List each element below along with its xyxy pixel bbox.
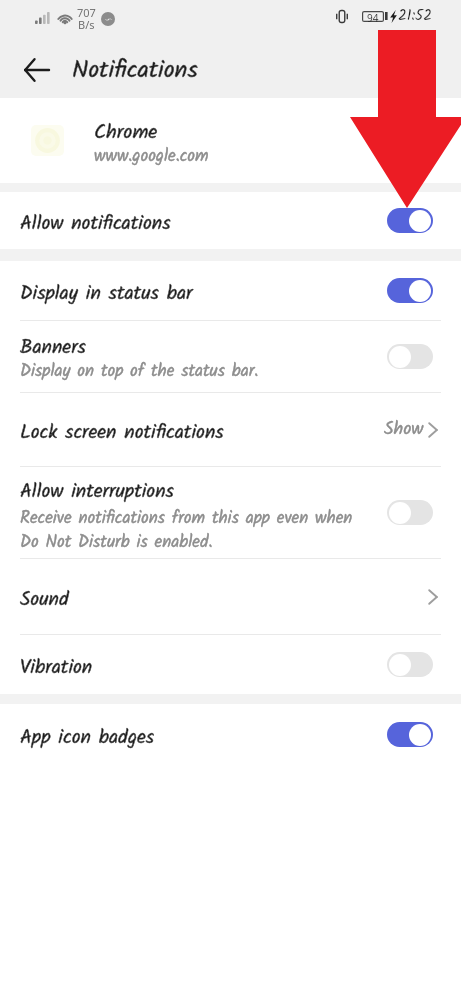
button[interactable]: Switch on (387, 208, 433, 233)
staticText: Allow interruptions (20, 476, 174, 507)
staticText: Banners (20, 332, 86, 363)
staticText: Show (384, 415, 424, 444)
staticText: 94 (367, 11, 379, 22)
button[interactable]: Allow interruptions (0, 467, 461, 558)
button[interactable]: App icon badges (0, 704, 461, 764)
staticText: Receive notifications from this app even… (20, 505, 353, 556)
staticText: Allow interruptions (20, 476, 174, 507)
staticText: Show (384, 415, 424, 444)
staticText: Vibration (20, 652, 93, 683)
button[interactable]: Vibration (0, 635, 461, 694)
button[interactable]: Sound (0, 559, 461, 634)
button[interactable]: Switch off (387, 652, 433, 677)
button[interactable]: Back (12, 46, 60, 94)
staticText: Allow notifications (20, 208, 171, 239)
staticText: Display in status bar (20, 278, 193, 309)
staticText: Chrome (94, 117, 158, 149)
staticText: Notifications (72, 51, 198, 89)
staticText: Vibration (20, 652, 93, 683)
staticText: Lock screen notifications (20, 417, 224, 448)
staticText: www.google.com (94, 143, 209, 170)
button[interactable]: Switch on (387, 278, 433, 303)
staticText: Display on top of the status bar. (20, 358, 259, 385)
staticText: Display in status bar (20, 278, 193, 309)
button[interactable]: Switch off (387, 344, 433, 369)
staticText: Display on top of the status bar. (20, 358, 259, 385)
button[interactable]: Banners (0, 321, 461, 392)
button[interactable]: Allow notifications (0, 192, 461, 249)
staticText: Notifications (72, 51, 198, 89)
staticText: www.google.com (94, 143, 209, 170)
staticText: App icon badges (20, 722, 155, 753)
staticText: 707 (77, 5, 96, 20)
staticText: Receive notifications from this app even… (20, 505, 353, 556)
button[interactable]: Switch on (387, 722, 433, 747)
button[interactable]: Chrome (0, 98, 461, 183)
staticText: Chrome (94, 117, 158, 149)
button[interactable]: Switch off (387, 500, 433, 525)
button[interactable]: Lock screen notifications (0, 393, 461, 466)
staticText: Sound (20, 584, 69, 615)
staticText: Lock screen notifications (20, 417, 224, 448)
button[interactable]: Display in status bar (0, 261, 461, 320)
staticText: App icon badges (20, 722, 155, 753)
staticText: Allow notifications (20, 208, 171, 239)
staticText: Banners (20, 332, 86, 363)
staticText: B/s (78, 17, 95, 32)
staticText: 21:52 (398, 4, 432, 28)
staticText: Sound (20, 584, 69, 615)
